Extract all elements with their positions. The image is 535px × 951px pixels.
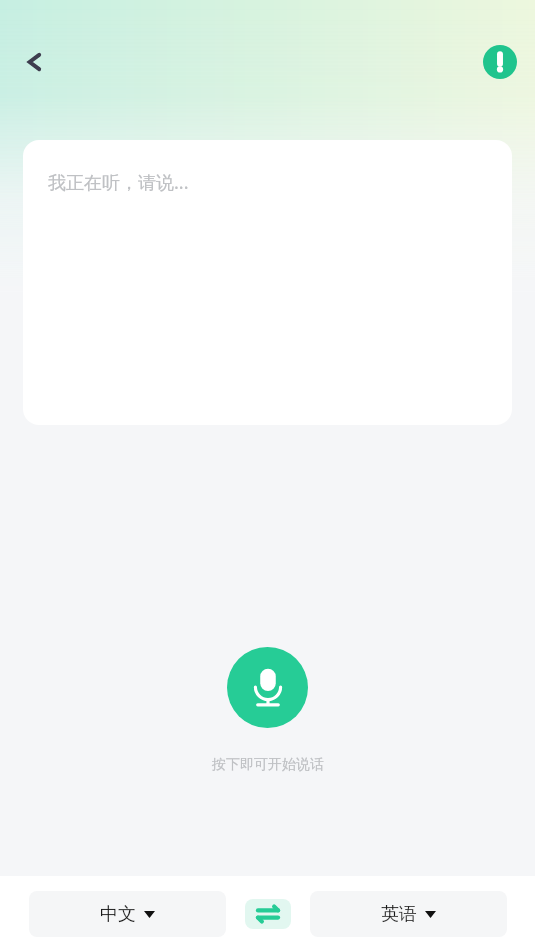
button[interactable]: Information [478,40,522,84]
staticText: 英语 [381,903,417,926]
button[interactable]: Hold to speak [227,647,308,728]
staticText: 按下即可开始说话 [212,756,324,774]
button[interactable]: 我正在听，请说... [23,140,512,425]
button[interactable]: 中文 [29,891,226,937]
staticText: 中文 [100,903,136,926]
button[interactable]: 英语 [310,891,507,937]
button[interactable]: Back [10,38,58,86]
button[interactable]: Swap languages [245,899,291,929]
staticText: 我正在听，请说... [48,170,189,195]
